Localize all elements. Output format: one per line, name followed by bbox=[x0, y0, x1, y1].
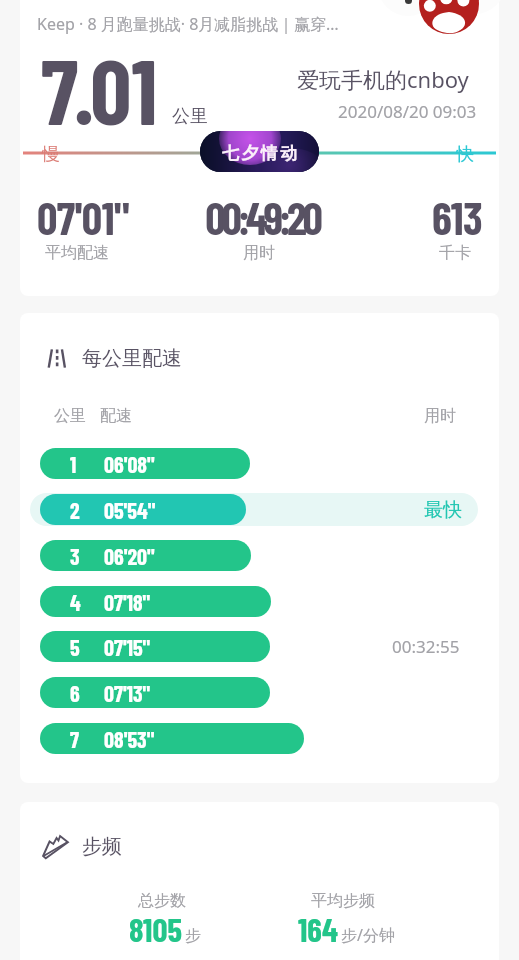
button[interactable]: Friend avatar bbox=[445, 0, 505, 14]
staticText: 配速 bbox=[100, 406, 132, 426]
button[interactable]: 4 bbox=[40, 586, 271, 617]
staticText: 平均配速 bbox=[20, 243, 197, 263]
button[interactable]: Friend avatar bbox=[378, 0, 438, 16]
button[interactable]: 5 bbox=[40, 631, 270, 662]
staticText: 用时 bbox=[139, 243, 379, 263]
staticText: 7 bbox=[70, 726, 79, 752]
staticText: 最快 bbox=[424, 498, 462, 522]
staticText: 8105 bbox=[129, 909, 182, 949]
button[interactable]: Profile bbox=[419, 0, 479, 34]
staticText: 步 bbox=[185, 926, 201, 946]
button[interactable]: 3 bbox=[40, 540, 251, 571]
staticText: 步频 bbox=[82, 834, 122, 859]
button[interactable]: 6 bbox=[40, 677, 270, 708]
staticText: 七夕情动 bbox=[222, 143, 300, 164]
staticText: 总步数 bbox=[42, 891, 282, 911]
staticText: 05'54" bbox=[104, 497, 156, 523]
staticText: 06'08" bbox=[104, 451, 155, 477]
staticText: 平均步频 bbox=[223, 891, 463, 911]
staticText: 5 bbox=[70, 634, 80, 660]
staticText: 6 bbox=[70, 680, 80, 706]
staticText: 07'13" bbox=[104, 680, 151, 706]
staticText: 07'01" bbox=[20, 190, 203, 244]
button[interactable]: 七夕情动 bbox=[200, 131, 319, 172]
staticText: 公里 bbox=[172, 105, 208, 128]
staticText: 步/分钟 bbox=[341, 924, 395, 946]
staticText: 千卡 bbox=[335, 243, 499, 263]
button[interactable]: 2 bbox=[40, 494, 246, 525]
staticText: 06'20" bbox=[104, 543, 155, 569]
staticText: Keep · 8 月跑量挑战· 8月减脂挑战｜赢穿… bbox=[37, 13, 339, 35]
staticText: 爱玩手机的cnboy bbox=[297, 64, 469, 94]
staticText: 慢 bbox=[42, 143, 60, 166]
staticText: 613 bbox=[337, 190, 499, 244]
staticText: 07'18" bbox=[104, 589, 151, 615]
staticText: 07'15" bbox=[104, 634, 151, 660]
button[interactable]: 7 bbox=[40, 723, 304, 754]
staticText: 3 bbox=[70, 543, 80, 569]
staticText: 2 bbox=[70, 497, 80, 523]
staticText: 00:49:20 bbox=[142, 190, 382, 244]
staticText: 7.01 bbox=[41, 34, 158, 143]
staticText: 00:32:55 bbox=[392, 635, 460, 658]
staticText: 用时 bbox=[424, 406, 456, 426]
staticText: 1 bbox=[70, 451, 77, 477]
staticText: 快 bbox=[456, 143, 474, 166]
staticText: 每公里配速 bbox=[82, 346, 182, 371]
staticText: 164 bbox=[298, 909, 338, 949]
staticText: 2020/08/20 09:03 bbox=[338, 100, 477, 123]
staticText: 4 bbox=[70, 589, 81, 615]
staticText: 公里 bbox=[54, 406, 86, 426]
staticText: 08'53" bbox=[104, 726, 155, 752]
button[interactable]: 1 bbox=[40, 448, 250, 479]
